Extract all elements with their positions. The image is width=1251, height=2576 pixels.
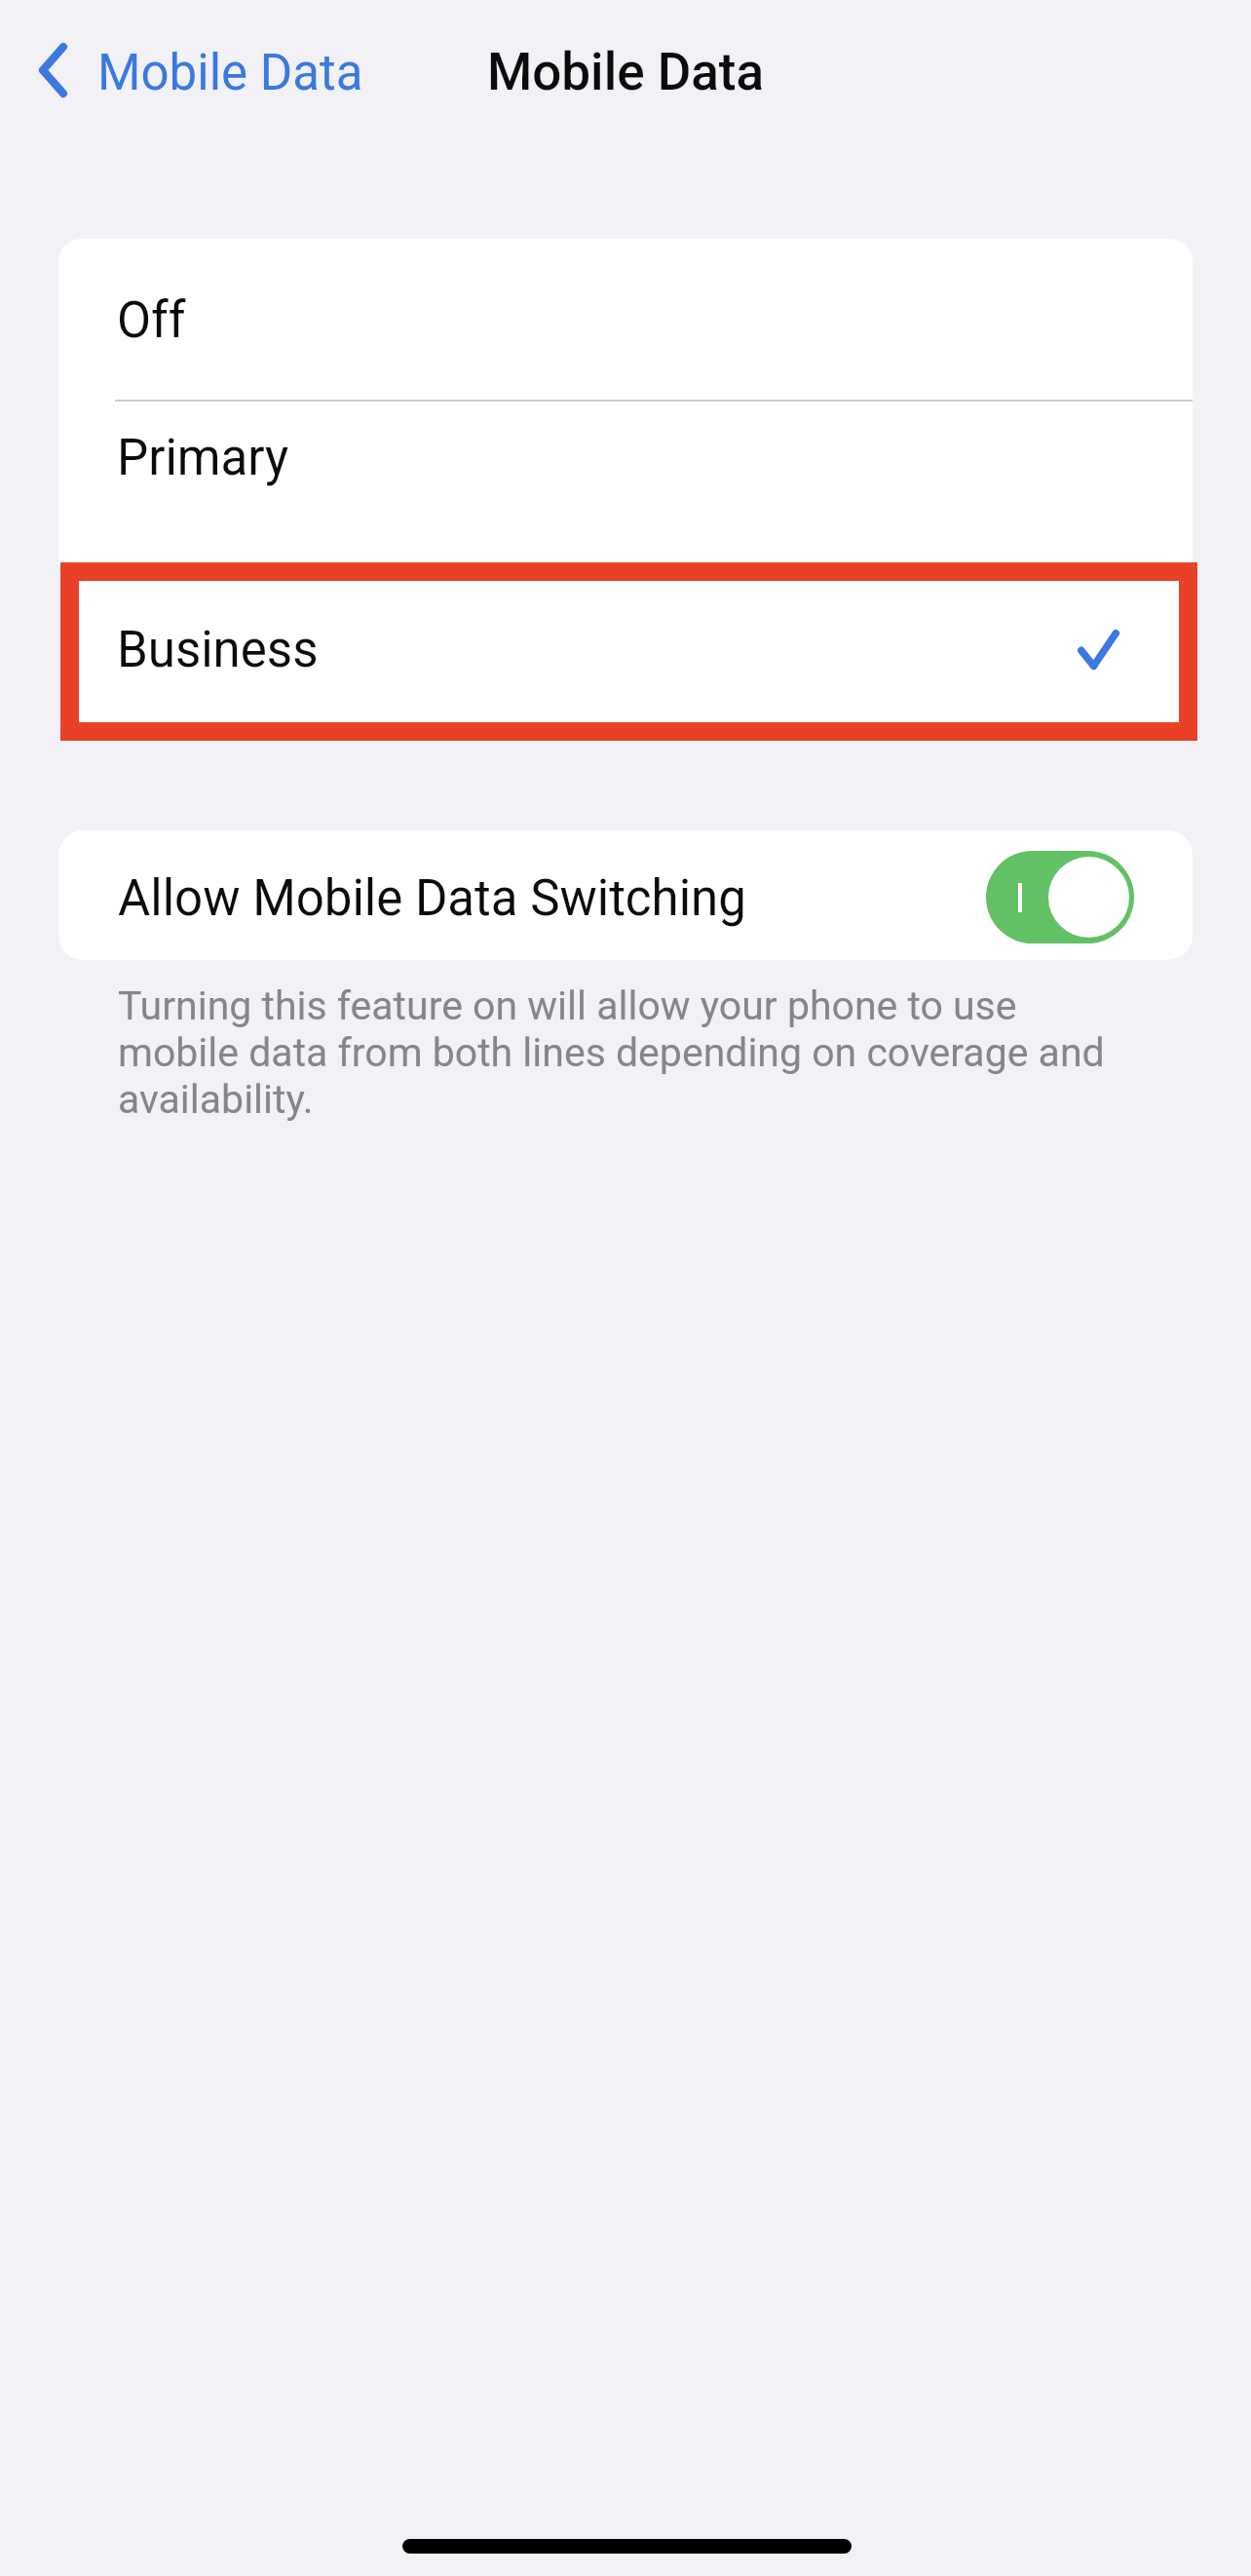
staticText: Mobile Data <box>97 44 363 102</box>
button[interactable]: Business <box>60 562 1197 741</box>
staticText: Mobile Data <box>0 42 1251 102</box>
button[interactable]: Allow Mobile Data Switching <box>986 851 1134 943</box>
button[interactable]: Allow Mobile Data Switching <box>58 830 1193 960</box>
button[interactable]: Primary <box>58 404 1193 513</box>
button[interactable]: Business <box>58 560 1193 739</box>
staticText: Allow Mobile Data Switching <box>118 869 746 928</box>
staticText: Turning this feature on will allow your … <box>118 982 1126 1123</box>
button[interactable]: Off <box>58 240 1193 402</box>
other: Selected <box>1078 630 1119 670</box>
staticText: Primary <box>117 429 289 487</box>
button[interactable]: Back to Mobile Data <box>19 19 387 128</box>
staticText: Business <box>117 621 319 679</box>
staticText: Off <box>117 291 186 350</box>
staticText: Business <box>117 621 319 679</box>
